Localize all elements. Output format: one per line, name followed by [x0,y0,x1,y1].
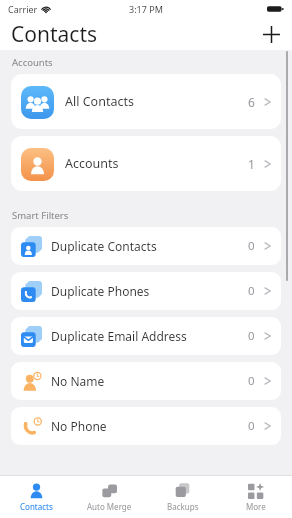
button[interactable]: Duplicate Phones [11,272,281,310]
staticText: Duplicate Phones [51,283,150,299]
staticText: 3:17 PM [129,3,163,15]
staticText: Auto Merge [87,501,132,512]
staticText: No Phone [51,418,107,434]
staticText: Duplicate Contacts [51,238,157,254]
staticText: 6 [248,94,255,110]
button[interactable]: Accounts [11,136,281,191]
staticText: 0 [248,418,255,434]
staticText: Accounts [12,56,53,69]
staticText: Accounts [65,155,119,172]
staticText: Backups [167,501,199,512]
staticText: 0 [248,373,255,389]
button[interactable]: Auto Merge [73,476,146,518]
staticText: Contacts [20,501,53,512]
staticText: 1 [248,156,255,172]
button[interactable]: More [219,476,292,518]
staticText: More [246,501,266,512]
staticText: 0 [248,283,255,299]
staticText: All Contacts [65,93,134,110]
button[interactable]: Contacts [0,476,73,518]
button[interactable]: Duplicate Email Address [11,317,281,355]
staticText: No Name [51,373,105,389]
staticText: Carrier [8,3,38,15]
button[interactable]: Backups [146,476,219,518]
button[interactable]: No Name [11,362,281,400]
staticText: 0 [248,328,255,344]
staticText: Contacts [11,20,98,49]
button[interactable]: No Phone [11,407,281,445]
button[interactable]: Duplicate Contacts [11,227,281,265]
button[interactable]: All Contacts [11,74,281,129]
staticText: Duplicate Email Address [51,328,187,344]
staticText: 0 [248,238,255,254]
staticText: Smart Filters [12,209,69,222]
button[interactable]: Add contact [256,19,286,49]
